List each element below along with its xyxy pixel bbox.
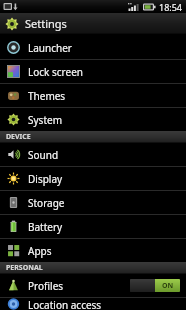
staticText: Apps xyxy=(28,244,52,258)
button[interactable]: Display xyxy=(0,167,186,190)
button[interactable]: Storage xyxy=(0,191,186,214)
staticText: Display xyxy=(28,172,63,186)
button[interactable]: Themes xyxy=(0,84,186,107)
button[interactable]: Profiles xyxy=(0,274,186,297)
button[interactable]: Sound xyxy=(0,143,186,166)
staticText: ON xyxy=(162,281,174,291)
button[interactable]: Settings xyxy=(0,13,186,34)
staticText: Location access xyxy=(28,298,102,310)
button[interactable]: Lock screen xyxy=(0,60,186,83)
button[interactable]: System xyxy=(0,108,186,131)
staticText: Sound xyxy=(28,148,59,162)
button[interactable]: Apps xyxy=(0,239,186,262)
staticText: 18:54 xyxy=(159,1,183,13)
staticText: Battery xyxy=(28,220,63,234)
staticText: System xyxy=(28,113,62,127)
staticText: Settings xyxy=(25,16,67,31)
button[interactable]: Profiles toggle, on xyxy=(130,279,180,292)
staticText: Profiles xyxy=(28,279,64,293)
button[interactable]: Launcher xyxy=(0,36,186,59)
staticText: Lock screen xyxy=(28,65,84,79)
staticText: Launcher xyxy=(28,41,72,55)
button[interactable]: Location access xyxy=(0,298,186,310)
staticText: PERSONAL xyxy=(6,263,43,273)
staticText: Themes xyxy=(28,89,66,103)
staticText: DEVICE xyxy=(6,132,31,142)
staticText: Storage xyxy=(28,196,65,210)
button[interactable]: Battery xyxy=(0,215,186,238)
